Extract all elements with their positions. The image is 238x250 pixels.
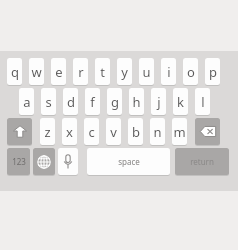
button[interactable]: return xyxy=(175,148,229,175)
staticText: c xyxy=(88,123,95,141)
staticText: g xyxy=(111,93,119,111)
button[interactable]: e xyxy=(51,58,66,85)
staticText: n xyxy=(153,123,162,141)
staticText: m xyxy=(173,123,186,141)
button[interactable]: c xyxy=(84,118,99,145)
staticText: v xyxy=(110,123,117,141)
button[interactable]: a xyxy=(19,88,34,115)
button[interactable]: v xyxy=(106,118,121,145)
staticText: j xyxy=(157,93,161,111)
button[interactable]: t xyxy=(95,58,110,85)
staticText: a xyxy=(23,93,31,111)
button[interactable]: i xyxy=(161,58,176,85)
staticText: p xyxy=(209,63,217,81)
staticText: f xyxy=(90,93,95,111)
staticText: q xyxy=(11,63,19,81)
button[interactable]: k xyxy=(173,88,188,115)
staticText: w xyxy=(31,63,42,81)
button[interactable]: h xyxy=(129,88,144,115)
button[interactable]: u xyxy=(139,58,154,85)
button[interactable]: s xyxy=(41,88,56,115)
button[interactable]: b xyxy=(128,118,143,145)
button[interactable]: f xyxy=(85,88,100,115)
staticText: i xyxy=(167,63,171,81)
button[interactable]: x xyxy=(62,118,77,145)
button[interactable]: y xyxy=(117,58,132,85)
staticText: u xyxy=(142,63,151,81)
staticText: o xyxy=(187,63,195,81)
staticText: x xyxy=(66,123,73,141)
button[interactable]: g xyxy=(107,88,122,115)
staticText: d xyxy=(67,93,75,111)
button[interactable]: Backspace xyxy=(195,118,220,145)
staticText: s xyxy=(45,93,52,111)
button[interactable]: r xyxy=(73,58,88,85)
staticText: t xyxy=(100,63,105,81)
button[interactable]: m xyxy=(172,118,187,145)
button[interactable]: 123 xyxy=(7,148,30,175)
button[interactable]: z xyxy=(40,118,55,145)
button[interactable]: j xyxy=(151,88,166,115)
button[interactable]: Voice input xyxy=(58,148,78,175)
button[interactable]: space xyxy=(87,148,170,175)
button[interactable]: o xyxy=(183,58,198,85)
button[interactable]: w xyxy=(29,58,44,85)
staticText: b xyxy=(132,123,140,141)
staticText: 123 xyxy=(12,156,26,167)
staticText: z xyxy=(44,123,51,141)
staticText: l xyxy=(201,93,205,111)
staticText: r xyxy=(78,63,84,81)
staticText: space xyxy=(118,156,140,167)
button[interactable]: q xyxy=(7,58,22,85)
staticText: h xyxy=(132,93,141,111)
staticText: k xyxy=(177,93,184,111)
staticText: y xyxy=(121,63,128,81)
staticText: return xyxy=(190,156,214,167)
button[interactable]: Change keyboard language xyxy=(33,148,55,175)
button[interactable]: n xyxy=(150,118,165,145)
button[interactable]: p xyxy=(205,58,220,85)
staticText: e xyxy=(55,63,63,81)
button[interactable]: l xyxy=(195,88,210,115)
button[interactable]: d xyxy=(63,88,78,115)
button[interactable]: Shift xyxy=(7,118,32,145)
